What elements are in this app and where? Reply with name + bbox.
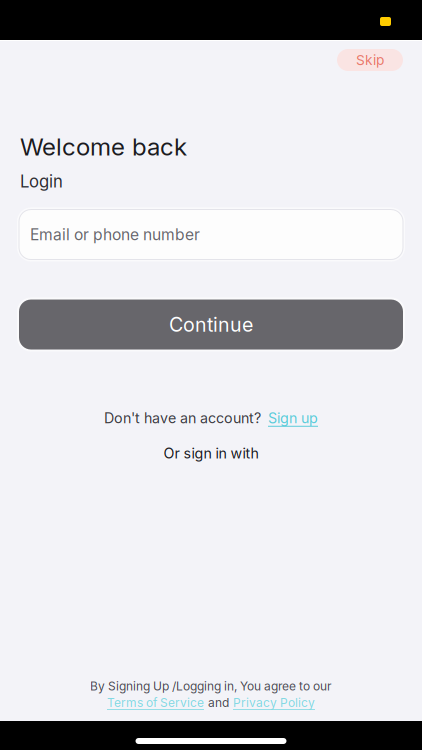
staticText: Welcome back bbox=[20, 132, 187, 161]
staticText: Or sign in with bbox=[163, 445, 258, 462]
staticText: Terms of Service bbox=[107, 695, 204, 710]
button[interactable]: Terms of Service bbox=[107, 695, 204, 710]
button[interactable]: Sign up bbox=[268, 409, 318, 427]
staticText: Don't have an account? bbox=[104, 409, 261, 427]
button[interactable]: Skip bbox=[337, 49, 403, 71]
staticText: Continue bbox=[169, 313, 253, 336]
staticText: Login bbox=[20, 171, 63, 192]
button[interactable]: Email or phone number bbox=[17, 207, 405, 261]
staticText: By Signing Up /Logging in, You agree to … bbox=[90, 679, 332, 693]
staticText: and bbox=[208, 695, 229, 710]
staticText: Sign up bbox=[268, 409, 318, 427]
staticText: Skip bbox=[356, 52, 384, 68]
staticText: Privacy Policy bbox=[233, 695, 315, 710]
button[interactable]: Privacy Policy bbox=[233, 695, 315, 710]
staticText: Email or phone number bbox=[30, 225, 200, 244]
button[interactable]: Continue bbox=[17, 297, 405, 351]
